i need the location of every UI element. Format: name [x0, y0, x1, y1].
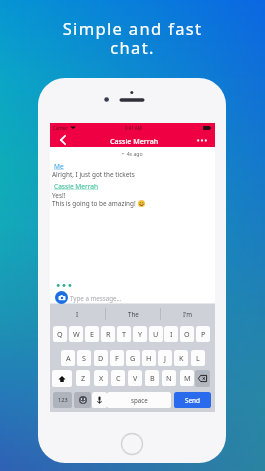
button[interactable]: Backspace [195, 370, 210, 387]
staticText: Cassie Merrah [54, 182, 99, 191]
staticText: P [201, 329, 206, 339]
staticText: Simple and fast chat. [0, 17, 265, 59]
button[interactable]: Emoji [74, 392, 91, 408]
staticText: D [98, 353, 104, 363]
button[interactable]: J [158, 350, 172, 366]
staticText: Type a message... [70, 294, 122, 302]
staticText: T [122, 329, 126, 339]
button[interactable]: 123 [53, 392, 72, 408]
button[interactable]: I [164, 326, 178, 342]
button[interactable]: More options [191, 132, 213, 148]
staticText: B [150, 373, 155, 383]
staticText: R [106, 329, 111, 339]
staticText: Cassie Merrah [110, 136, 159, 146]
staticText: X [99, 373, 104, 383]
button[interactable]: U [149, 326, 163, 342]
button[interactable]: M [180, 370, 194, 386]
button[interactable]: W [69, 326, 83, 342]
staticText: Carrier [53, 125, 68, 131]
staticText: C [116, 373, 121, 383]
staticText: space [131, 396, 148, 404]
staticText: L [196, 353, 200, 363]
button[interactable]: H [142, 350, 156, 366]
button[interactable]: I'm [161, 304, 215, 324]
staticText: E [90, 329, 94, 339]
button[interactable]: Y [133, 326, 147, 342]
button[interactable]: O [180, 326, 194, 342]
button[interactable]: D [94, 350, 108, 366]
staticText: Q [57, 329, 63, 339]
button[interactable]: L [191, 350, 205, 366]
button[interactable]: P [196, 326, 210, 342]
button[interactable]: space [107, 392, 171, 408]
staticText: V [133, 373, 138, 383]
button[interactable]: V [128, 370, 142, 386]
button[interactable]: K [174, 350, 188, 366]
staticText: • 4s ago [122, 150, 143, 157]
button[interactable]: E [85, 326, 99, 342]
staticText: Alright, I just got the tickets [52, 170, 135, 179]
button[interactable]: S [77, 350, 91, 366]
button[interactable]: N [162, 370, 176, 386]
staticText: U [153, 329, 159, 339]
button[interactable]: Back [54, 132, 71, 148]
staticText: Me [54, 162, 64, 171]
staticText: O [184, 329, 190, 339]
button[interactable]: G [126, 350, 140, 366]
staticText: Yes!! [52, 191, 66, 200]
staticText: The [128, 310, 139, 318]
staticText: K [179, 353, 184, 363]
button[interactable]: The [106, 304, 160, 324]
staticText: I [76, 310, 79, 318]
staticText: 123 [58, 396, 68, 404]
staticText: J [164, 353, 166, 363]
button[interactable]: I [50, 304, 105, 324]
staticText: Y [138, 329, 143, 339]
button[interactable]: A [61, 350, 75, 366]
staticText: H [146, 353, 152, 363]
staticText: I'm [183, 310, 193, 318]
button[interactable]: Voice input [92, 392, 107, 408]
staticText: I [170, 329, 173, 339]
button[interactable]: B [145, 370, 159, 386]
staticText: Z [81, 373, 86, 383]
button[interactable]: Send [174, 392, 211, 408]
button[interactable]: F [110, 350, 124, 366]
staticText: This is going to be amazing! [52, 199, 136, 208]
button[interactable]: T [117, 326, 131, 342]
staticText: A [66, 353, 71, 363]
button[interactable]: Shift [52, 370, 72, 387]
staticText: Send [185, 396, 200, 405]
staticText: S [82, 353, 86, 363]
staticText: N [166, 373, 172, 383]
button[interactable]: Camera [55, 291, 68, 304]
staticText: W [73, 329, 80, 339]
button[interactable]: Q [53, 326, 67, 342]
staticText: M [184, 373, 191, 383]
staticText: 9:41 AM [125, 125, 142, 131]
button[interactable]: R [101, 326, 115, 342]
staticText: F [115, 353, 119, 363]
button[interactable]: Z [76, 370, 90, 386]
button[interactable]: C [111, 370, 125, 386]
staticText: G [130, 353, 136, 363]
button[interactable]: X [94, 370, 108, 386]
